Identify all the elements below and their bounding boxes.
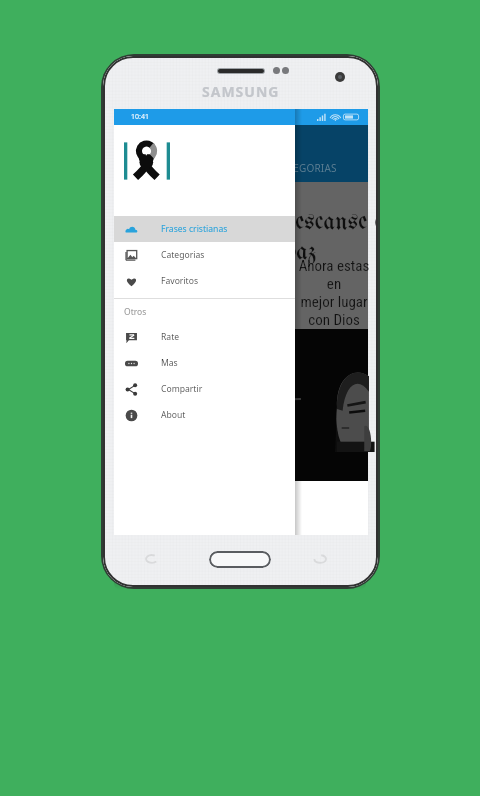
staticText: Otros — [124, 306, 147, 318]
staticText: paz — [285, 239, 317, 265]
staticText: CATEGORIAS — [275, 161, 337, 175]
button[interactable]: Categorias — [114, 242, 295, 268]
staticText: SAMSUNG — [202, 82, 280, 101]
staticText: About — [161, 409, 186, 421]
staticText: Ahora estas en mejor lugar con Dios — [244, 257, 378, 329]
button[interactable]: About — [114, 402, 295, 428]
staticText: Compartir — [161, 383, 203, 395]
staticText: 10:41 — [131, 112, 149, 122]
staticText: Frases cristianas — [161, 223, 228, 235]
button[interactable]: Favoritos — [114, 268, 295, 294]
button[interactable]: Rate — [114, 324, 295, 350]
staticText: Favoritos — [161, 275, 199, 287]
button[interactable]: Compartir — [114, 376, 295, 402]
staticText: Categorias — [161, 249, 205, 261]
button[interactable]: Frases cristianas — [114, 216, 295, 242]
button[interactable]: Mas — [114, 350, 295, 376]
staticText: Mas — [161, 357, 178, 369]
staticText: Rate — [161, 331, 180, 343]
staticText: Descanse en — [275, 209, 378, 235]
